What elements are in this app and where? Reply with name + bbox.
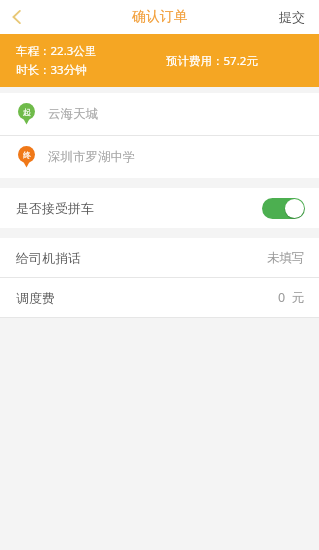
staticText: 未填写 [267,250,305,266]
staticText: 起 [23,107,31,117]
button[interactable]: 是否接受拼车 [0,188,319,228]
button[interactable]: 提交 [265,0,319,34]
staticText: 是否接受拼车 [16,200,94,216]
staticText: 0 元 [278,289,305,306]
staticText: 预计费用：57.2元 [166,53,258,69]
button[interactable]: Accept carpool toggle [262,198,305,219]
button[interactable]: Back [0,0,34,34]
button[interactable]: 起 [0,93,319,135]
staticText: 调度费 [16,290,55,306]
button[interactable]: 终 [0,136,319,178]
staticText: 提交 [279,9,305,25]
staticText: 时长：33分钟 [16,62,87,78]
staticText: 确认订单 [132,8,188,26]
button[interactable]: 调度费 [0,278,319,317]
button[interactable]: 给司机捎话 [0,238,319,277]
staticText: 给司机捎话 [16,250,81,266]
staticText: 深圳市罗湖中学 [48,149,136,165]
staticText: 车程：22.3公里 [16,43,97,59]
staticText: 终 [23,150,31,160]
staticText: 云海天城 [48,106,98,122]
